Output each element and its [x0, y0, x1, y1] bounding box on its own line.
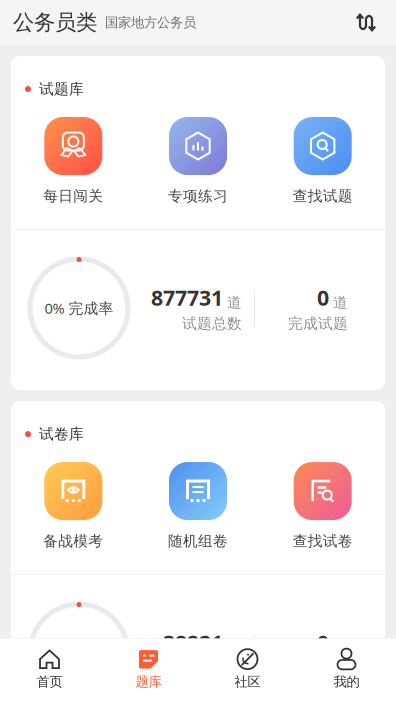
- staticText: 首页: [36, 674, 62, 690]
- staticText: 试题总数: [182, 315, 242, 333]
- button[interactable]: 随机组卷: [136, 462, 260, 550]
- button[interactable]: 专项练习: [136, 117, 260, 205]
- staticText: 完成试题: [288, 315, 348, 333]
- staticText: 0: [317, 628, 329, 657]
- button[interactable]: 查找试题: [260, 117, 385, 205]
- button[interactable]: 社区: [198, 639, 297, 702]
- staticText: 我的: [333, 674, 359, 690]
- staticText: 试卷总数: [182, 660, 242, 678]
- staticText: 随机组卷: [168, 532, 228, 550]
- staticText: 公务员类: [13, 9, 97, 36]
- staticText: 试题库: [39, 80, 84, 98]
- staticText: 道: [333, 294, 348, 312]
- button[interactable]: 题库: [99, 639, 198, 702]
- staticText: 38221: [163, 628, 223, 657]
- staticText: 877731: [151, 283, 223, 312]
- staticText: 试卷库: [39, 425, 84, 443]
- staticText: 完成试卷: [288, 660, 348, 678]
- staticText: 查找试题: [293, 187, 353, 205]
- staticText: 0% 完成率: [44, 298, 113, 318]
- staticText: 0% 完成率: [44, 643, 113, 663]
- staticText: 题库: [135, 674, 161, 690]
- staticText: 专项练习: [168, 187, 228, 205]
- staticText: 备战模考: [43, 532, 103, 550]
- button[interactable]: 切换考试类别: [350, 6, 382, 38]
- staticText: 查找试卷: [293, 532, 353, 550]
- staticText: 国家地方公务员: [97, 14, 196, 31]
- button[interactable]: 首页: [0, 639, 99, 702]
- button[interactable]: 备战模考: [11, 462, 136, 550]
- staticText: 道: [227, 294, 242, 312]
- staticText: 每日闯关: [43, 187, 103, 205]
- button[interactable]: 查找试卷: [260, 462, 385, 550]
- button[interactable]: 我的: [297, 639, 396, 702]
- button[interactable]: 每日闯关: [11, 117, 136, 205]
- staticText: 社区: [234, 674, 260, 690]
- staticText: 0: [317, 283, 329, 312]
- staticText: 道: [227, 639, 242, 657]
- staticText: 道: [333, 639, 348, 657]
